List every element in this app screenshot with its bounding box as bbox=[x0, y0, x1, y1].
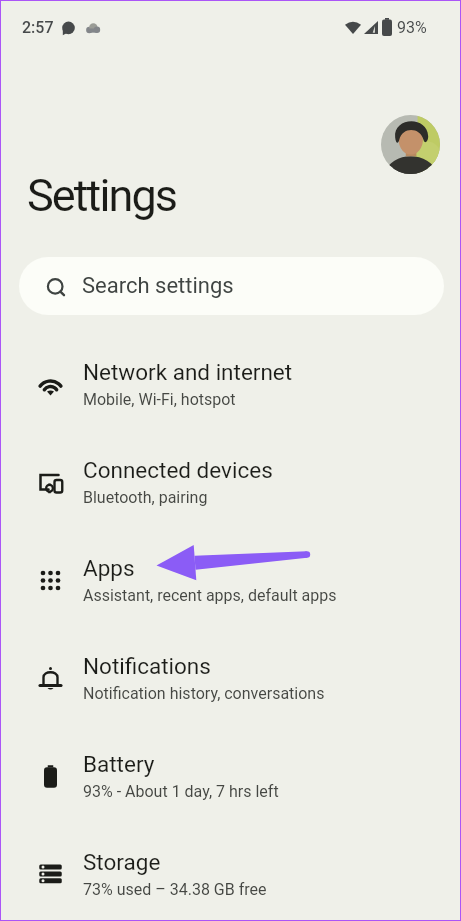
staticText: Settings bbox=[27, 169, 177, 222]
button[interactable]: Notifications bbox=[1, 629, 460, 727]
staticText: Battery bbox=[83, 751, 155, 777]
button[interactable]: Apps bbox=[1, 531, 460, 629]
staticText: Search settings bbox=[82, 273, 234, 299]
staticText: Storage bbox=[83, 849, 161, 875]
staticText: 2:57 bbox=[22, 18, 54, 37]
button[interactable]: Storage bbox=[1, 825, 460, 921]
button[interactable]: Search settings bbox=[19, 257, 444, 315]
staticText: Bluetooth, pairing bbox=[83, 488, 208, 507]
staticText: Network and internet bbox=[83, 359, 293, 385]
staticText: Apps bbox=[83, 555, 135, 581]
button[interactable] bbox=[381, 115, 440, 174]
staticText: Notifications bbox=[83, 653, 211, 679]
staticText: 93% bbox=[397, 18, 427, 37]
staticText: 73% used – 34.38 GB free bbox=[83, 880, 267, 899]
button[interactable]: Battery bbox=[1, 727, 460, 825]
button[interactable]: Network and internet bbox=[1, 335, 460, 433]
staticText: 93% - About 1 day, 7 hrs left bbox=[83, 782, 279, 801]
staticText: Notification history, conversations bbox=[83, 684, 325, 703]
staticText: Assistant, recent apps, default apps bbox=[83, 586, 337, 605]
staticText: Connected devices bbox=[83, 457, 273, 483]
button[interactable]: Connected devices bbox=[1, 433, 460, 531]
staticText: Mobile, Wi-Fi, hotspot bbox=[83, 390, 236, 409]
